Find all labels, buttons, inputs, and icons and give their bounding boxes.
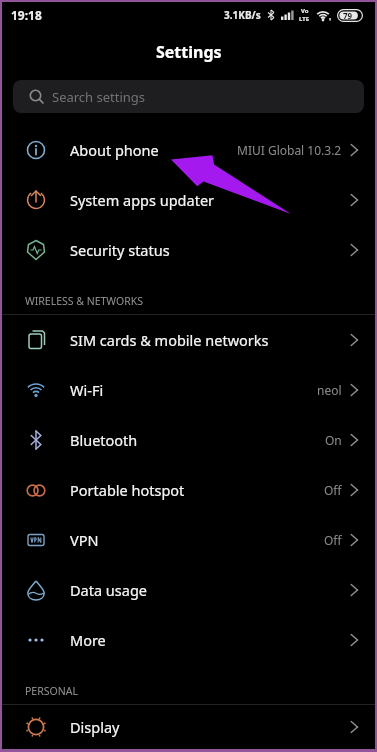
staticText: neol	[317, 382, 342, 398]
button[interactable]: Portable hotspot	[2, 465, 375, 515]
staticText: Search settings	[52, 88, 146, 106]
button[interactable]: VPN	[2, 515, 375, 565]
staticText: Portable hotspot	[70, 480, 185, 500]
staticText: Display	[70, 717, 120, 737]
staticText: PERSONAL	[25, 684, 78, 698]
button[interactable]: Security status	[2, 225, 375, 275]
staticText: Off	[324, 482, 342, 498]
staticText: Bluetooth	[70, 430, 138, 450]
staticText: 79	[343, 10, 353, 21]
button[interactable]: Wi-Fi	[2, 365, 375, 415]
staticText: Security status	[70, 240, 170, 260]
button[interactable]: Search settings	[13, 80, 364, 113]
staticText: Vo	[301, 7, 309, 15]
staticText: Off	[324, 532, 342, 548]
staticText: WIRELESS & NETWORKS	[25, 294, 144, 308]
staticText: System apps updater	[70, 190, 215, 210]
staticText: 19:18	[11, 7, 42, 23]
staticText: LTE	[299, 15, 310, 23]
staticText: 3.1KB/s	[224, 8, 261, 22]
staticText: Settings	[156, 41, 222, 63]
button[interactable]: SIM cards & mobile networks	[2, 315, 375, 365]
staticText: About phone	[70, 140, 159, 160]
staticText: VPN	[70, 530, 99, 550]
button[interactable]: Display	[2, 705, 375, 749]
button[interactable]: More	[2, 615, 375, 665]
button[interactable]: About phone	[2, 125, 375, 175]
button[interactable]: Data usage	[2, 565, 375, 615]
staticText: More	[70, 630, 106, 650]
staticText: On	[325, 432, 342, 448]
button[interactable]: Bluetooth	[2, 415, 375, 465]
button[interactable]: System apps updater	[2, 175, 375, 225]
staticText: MIUI Global 10.3.2	[237, 142, 342, 158]
staticText: Data usage	[70, 580, 147, 600]
staticText: SIM cards & mobile networks	[70, 330, 269, 350]
staticText: Wi-Fi	[70, 380, 104, 400]
